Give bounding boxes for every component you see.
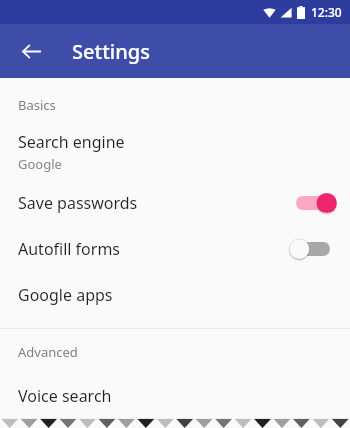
staticText: Settings: [72, 38, 150, 65]
staticText: Advanced: [18, 343, 78, 361]
button[interactable]: Autofill forms: [0, 226, 350, 272]
button[interactable]: Google apps: [0, 272, 350, 318]
staticText: Search engine: [18, 131, 125, 153]
staticText: 12:30: [311, 4, 342, 20]
button[interactable]: Save passwords: [0, 180, 350, 226]
staticText: Autofill forms: [18, 238, 292, 260]
button[interactable]: Back: [14, 34, 48, 68]
staticText: Save passwords: [18, 192, 292, 214]
button[interactable]: Voice search: [0, 373, 350, 419]
button[interactable]: Search engine: [0, 124, 350, 180]
staticText: Basics: [18, 96, 56, 114]
staticText: Voice search: [18, 385, 112, 407]
staticText: Google apps: [18, 284, 113, 306]
staticText: Google: [18, 155, 62, 173]
